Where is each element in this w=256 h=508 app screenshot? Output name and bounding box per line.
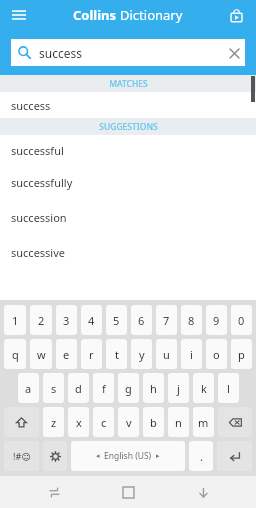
staticText: successful bbox=[11, 143, 64, 158]
staticText: ▸ bbox=[156, 452, 160, 460]
button[interactable]: 9 bbox=[206, 305, 227, 335]
button[interactable]: 4 bbox=[81, 305, 102, 335]
staticText: k bbox=[201, 381, 207, 396]
button[interactable]: 2 bbox=[30, 305, 52, 335]
button[interactable]: x bbox=[68, 407, 89, 437]
button[interactable]: Switch input method bbox=[33, 476, 75, 508]
button[interactable]: Clear search bbox=[223, 42, 245, 64]
button[interactable]: y bbox=[131, 339, 152, 369]
button[interactable]: successive bbox=[0, 235, 256, 270]
staticText: . bbox=[200, 449, 203, 464]
button[interactable]: b bbox=[143, 407, 164, 437]
button[interactable]: success bbox=[0, 92, 256, 118]
button[interactable]: m bbox=[193, 407, 214, 437]
button[interactable]: 3 bbox=[56, 305, 77, 335]
button[interactable]: Shift bbox=[4, 407, 39, 437]
staticText: h bbox=[150, 381, 157, 396]
button[interactable]: 8 bbox=[181, 305, 202, 335]
staticText: v bbox=[126, 415, 132, 430]
staticText: x bbox=[76, 415, 82, 430]
staticText: o bbox=[213, 347, 220, 362]
staticText: Collins bbox=[73, 6, 120, 24]
staticText: d bbox=[75, 381, 82, 396]
staticText: w bbox=[37, 347, 46, 362]
button[interactable]: r bbox=[81, 339, 102, 369]
button[interactable]: w bbox=[30, 339, 52, 369]
button[interactable]: v bbox=[118, 407, 139, 437]
staticText: e bbox=[63, 347, 70, 362]
button[interactable]: q bbox=[4, 339, 26, 369]
button[interactable]: Home bbox=[107, 476, 149, 508]
staticText: g bbox=[125, 381, 132, 396]
staticText: 4 bbox=[88, 313, 95, 328]
button[interactable]: succession bbox=[0, 200, 256, 235]
staticText: 8 bbox=[188, 313, 195, 328]
button[interactable]: Backspace bbox=[218, 407, 252, 437]
staticText: 5 bbox=[113, 313, 120, 328]
button[interactable]: Menu bbox=[6, 2, 32, 28]
staticText: success bbox=[11, 98, 51, 113]
staticText: SUGGESTIONS bbox=[99, 121, 158, 133]
staticText: u bbox=[163, 347, 170, 362]
staticText: successfully bbox=[11, 175, 73, 190]
staticText: 3 bbox=[63, 313, 70, 328]
button[interactable]: s bbox=[43, 373, 64, 403]
button[interactable]: . bbox=[189, 441, 213, 471]
button[interactable]: Enter bbox=[217, 441, 252, 471]
button[interactable]: Back bbox=[182, 476, 224, 508]
button[interactable]: h bbox=[143, 373, 164, 403]
button[interactable]: p bbox=[231, 339, 252, 369]
staticText: l bbox=[227, 381, 230, 396]
staticText: MATCHES bbox=[109, 78, 148, 90]
button[interactable]: 5 bbox=[106, 305, 127, 335]
button[interactable]: Google Play Store bbox=[224, 3, 248, 27]
staticText: s bbox=[51, 381, 57, 396]
staticText: n bbox=[175, 415, 182, 430]
button[interactable]: u bbox=[156, 339, 177, 369]
button[interactable]: c bbox=[93, 407, 114, 437]
button[interactable]: Settings bbox=[43, 441, 67, 471]
staticText: 0 bbox=[238, 313, 245, 328]
button[interactable]: successful bbox=[0, 135, 256, 165]
button[interactable]: j bbox=[168, 373, 189, 403]
staticText: ◂ bbox=[96, 452, 100, 460]
staticText: z bbox=[51, 415, 57, 430]
button[interactable]: 7 bbox=[156, 305, 177, 335]
button[interactable]: g bbox=[118, 373, 139, 403]
staticText: p bbox=[238, 347, 245, 362]
button[interactable]: k bbox=[193, 373, 214, 403]
staticText: 7 bbox=[163, 313, 170, 328]
button[interactable]: t bbox=[106, 339, 127, 369]
staticText: i bbox=[190, 347, 193, 362]
button[interactable]: 0 bbox=[231, 305, 252, 335]
button[interactable]: Symbols bbox=[4, 441, 39, 471]
staticText: a bbox=[25, 381, 32, 396]
button[interactable]: f bbox=[93, 373, 114, 403]
button[interactable]: 6 bbox=[131, 305, 152, 335]
staticText: English (US) bbox=[104, 450, 152, 462]
button[interactable]: success bbox=[11, 39, 245, 66]
button[interactable]: successfully bbox=[0, 165, 256, 200]
staticText: r bbox=[89, 347, 94, 362]
staticText: 2 bbox=[38, 313, 45, 328]
staticText: m bbox=[198, 415, 209, 430]
button[interactable]: 1 bbox=[4, 305, 26, 335]
button[interactable]: e bbox=[56, 339, 77, 369]
staticText: c bbox=[101, 415, 107, 430]
button[interactable]: i bbox=[181, 339, 202, 369]
staticText: Dictionary bbox=[120, 6, 183, 24]
button[interactable]: o bbox=[206, 339, 227, 369]
button[interactable]: ◂ bbox=[71, 441, 185, 471]
button[interactable]: n bbox=[168, 407, 189, 437]
staticText: 1 bbox=[12, 313, 19, 328]
staticText: success bbox=[39, 45, 82, 61]
staticText: t bbox=[115, 347, 119, 362]
button[interactable]: z bbox=[43, 407, 64, 437]
staticText: !#☺ bbox=[13, 450, 31, 462]
staticText: succession bbox=[11, 210, 67, 225]
staticText: 6 bbox=[138, 313, 145, 328]
staticText: b bbox=[150, 415, 157, 430]
button[interactable]: a bbox=[18, 373, 39, 403]
button[interactable]: d bbox=[68, 373, 89, 403]
button[interactable]: l bbox=[218, 373, 239, 403]
